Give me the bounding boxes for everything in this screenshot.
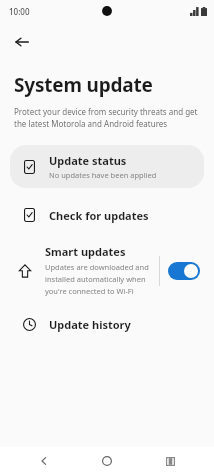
staticText: Check for updates — [49, 208, 149, 223]
staticText: Protect your device from security threat… — [14, 106, 200, 130]
button[interactable]: Update history — [0, 305, 214, 343]
button[interactable]: Check for updates — [0, 196, 214, 234]
staticText: Update history — [49, 317, 131, 332]
button[interactable]: Recent apps — [160, 451, 180, 471]
button[interactable]: Back — [34, 451, 54, 471]
staticText: Smart updates — [45, 244, 126, 259]
button[interactable]: Update status — [10, 145, 204, 188]
staticText: Update status — [49, 153, 127, 168]
button[interactable]: Back — [8, 28, 36, 56]
staticText: 10:00 — [9, 6, 30, 17]
button[interactable]: Smart updates toggle, on — [168, 262, 200, 280]
staticText: Updates are downloaded and installed aut… — [45, 262, 153, 297]
staticText: System update — [14, 72, 153, 98]
staticText: No updates have been applied — [49, 170, 157, 180]
button[interactable]: Home — [97, 451, 117, 471]
